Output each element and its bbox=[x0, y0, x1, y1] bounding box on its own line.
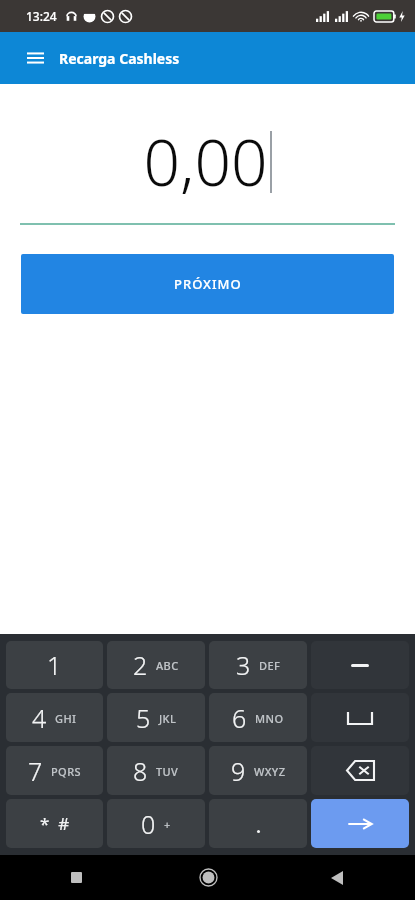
button[interactable]: Open navigation menu bbox=[20, 43, 50, 73]
button[interactable]: 0,00 bbox=[0, 114, 415, 209]
staticText: JKL bbox=[159, 711, 177, 726]
button[interactable]: Dash bbox=[311, 641, 409, 689]
button[interactable]: 6 bbox=[209, 693, 307, 742]
button[interactable]: 7 bbox=[6, 746, 103, 795]
staticText: PRÓXIMO bbox=[174, 275, 242, 293]
button[interactable]: 1 bbox=[6, 641, 103, 689]
button[interactable]: 3 bbox=[209, 641, 307, 689]
button[interactable]: 0 bbox=[107, 799, 205, 848]
staticText: TUV bbox=[156, 764, 179, 779]
staticText: 0 bbox=[141, 807, 156, 841]
button[interactable]: Delete bbox=[311, 746, 409, 795]
staticText: Recarga Cashless bbox=[59, 49, 180, 68]
staticText: 1 bbox=[47, 648, 62, 682]
button[interactable]: Space bbox=[311, 693, 409, 742]
staticText: WXYZ bbox=[254, 764, 286, 779]
staticText: 7 bbox=[28, 754, 43, 788]
staticText: PQRS bbox=[51, 764, 81, 779]
button[interactable]: 9 bbox=[209, 746, 307, 795]
staticText: MNO bbox=[255, 711, 284, 726]
staticText: 3 bbox=[236, 648, 251, 682]
button[interactable]: 5 bbox=[107, 693, 205, 742]
button[interactable]: Enter bbox=[311, 799, 409, 848]
button[interactable]: 2 bbox=[107, 641, 205, 689]
staticText: + bbox=[164, 817, 171, 832]
staticText: 5 bbox=[136, 701, 151, 735]
staticText: DEF bbox=[259, 658, 281, 673]
button[interactable]: * # bbox=[6, 799, 103, 848]
staticText: 0,00 bbox=[143, 118, 268, 205]
staticText: 6 bbox=[232, 701, 247, 735]
button[interactable]: 4 bbox=[6, 693, 103, 742]
staticText: 13:24 bbox=[26, 8, 57, 24]
staticText: ABC bbox=[156, 658, 179, 673]
button[interactable]: Home bbox=[139, 855, 277, 900]
staticText: 9 bbox=[231, 754, 246, 788]
button[interactable]: PRÓXIMO bbox=[21, 254, 394, 314]
button[interactable]: Recent apps bbox=[0, 855, 139, 900]
button[interactable] bbox=[209, 799, 307, 848]
staticText: 4 bbox=[32, 701, 47, 735]
staticText: * # bbox=[40, 812, 70, 835]
staticText: 8 bbox=[133, 754, 148, 788]
staticText: GHI bbox=[55, 711, 77, 726]
staticText: 2 bbox=[133, 648, 148, 682]
button[interactable]: Back bbox=[277, 855, 415, 900]
button[interactable]: 8 bbox=[107, 746, 205, 795]
